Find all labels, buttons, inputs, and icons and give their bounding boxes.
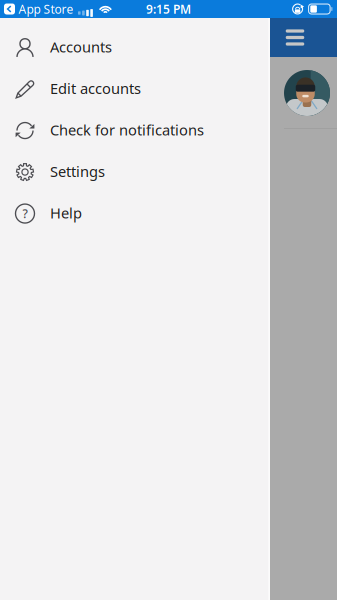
staticText: Settings (50, 161, 105, 181)
staticText: Check for notifications (50, 120, 204, 139)
button[interactable]: Menu (280, 18, 310, 57)
staticText: ? (22, 206, 27, 221)
staticText: Help (50, 203, 82, 222)
staticText: Accounts (50, 37, 112, 56)
staticText: 9:15 PM (146, 1, 191, 17)
staticText: App Store (18, 1, 73, 17)
button[interactable]: Edit accounts (0, 67, 270, 109)
button[interactable]: Accounts (0, 26, 270, 67)
button[interactable]: ? (0, 192, 270, 233)
button[interactable]: Settings (0, 150, 270, 192)
staticText: Edit accounts (50, 78, 141, 98)
button[interactable]: Check for notifications (0, 109, 270, 150)
